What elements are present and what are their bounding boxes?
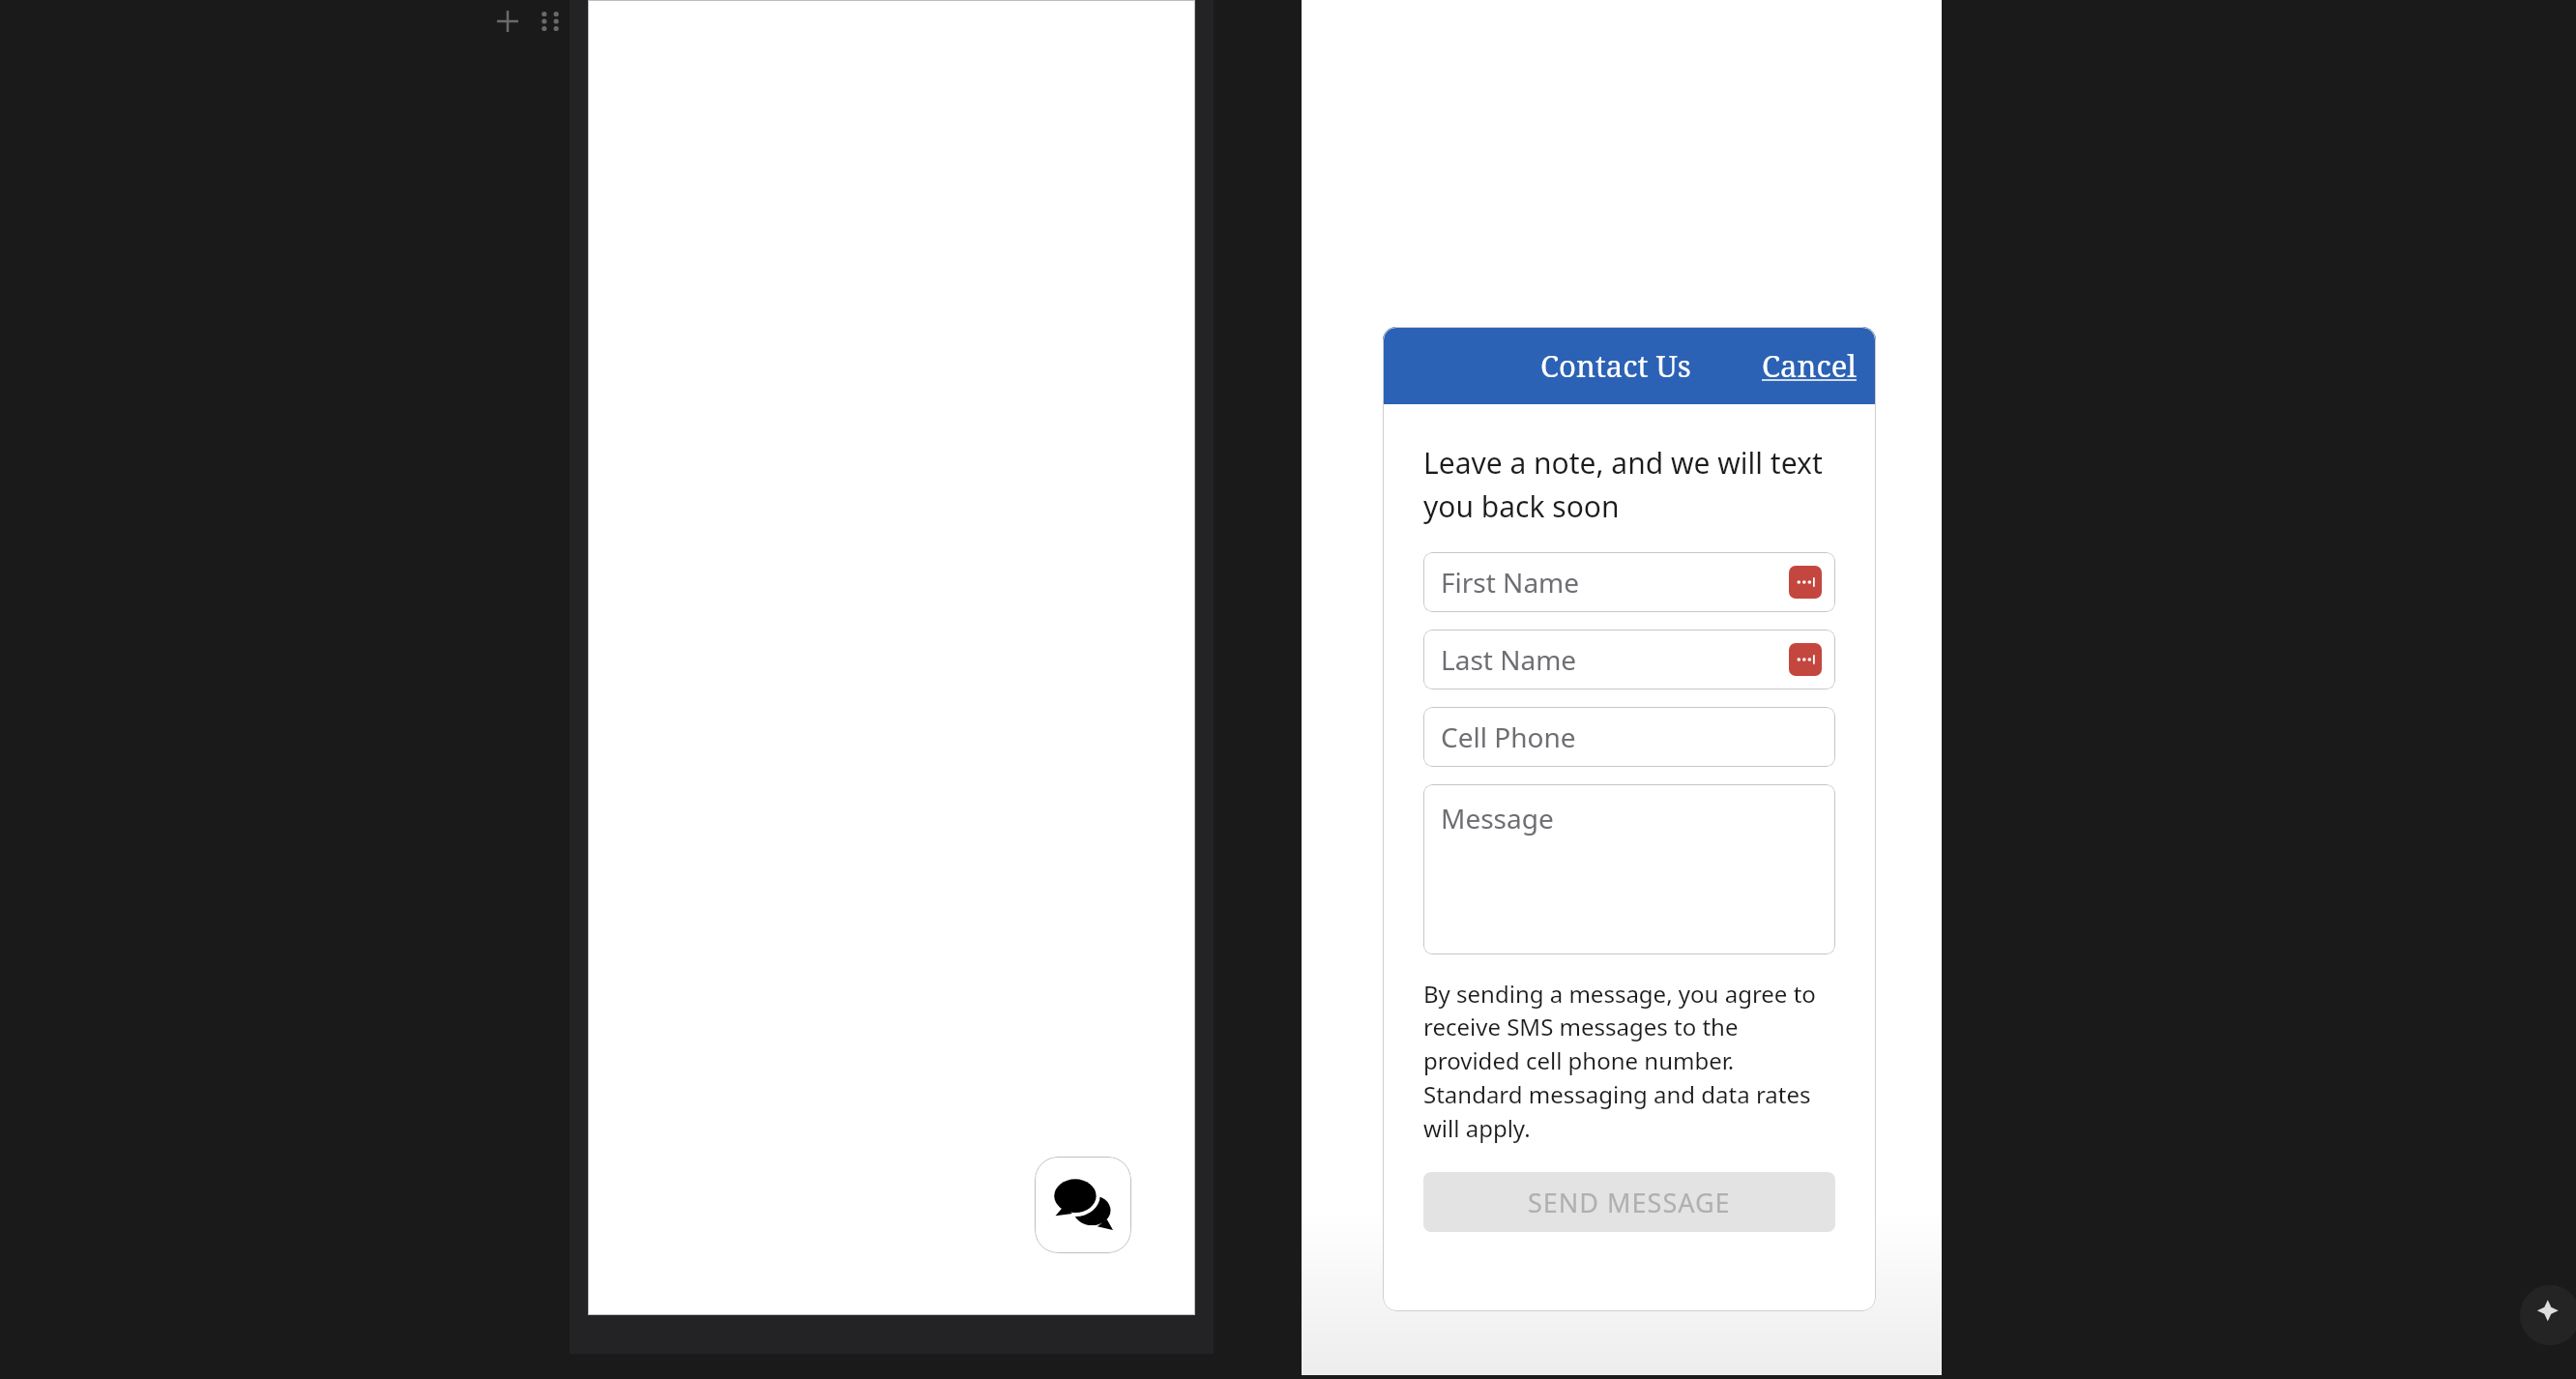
staticText: First Name [1441, 564, 1580, 601]
staticText: Contact Us [1540, 345, 1691, 386]
button[interactable]: Autofill [1789, 643, 1822, 676]
button[interactable]: First Name [1423, 552, 1835, 612]
button[interactable]: Cancel [1758, 339, 1860, 392]
staticText: Message [1441, 800, 1554, 836]
button[interactable]: Grid menu [531, 2, 570, 41]
button[interactable]: Open chat [1035, 1157, 1131, 1253]
staticText: By sending a message, you agree to recei… [1423, 978, 1835, 1145]
staticText: Last Name [1441, 641, 1577, 678]
button[interactable]: Autofill [1789, 566, 1822, 599]
button[interactable]: Last Name [1423, 630, 1835, 689]
button[interactable]: Cell Phone [1423, 707, 1835, 767]
staticText: Cell Phone [1441, 719, 1576, 755]
staticText: Leave a note, and we will text you back … [1423, 443, 1823, 525]
staticText: SEND MESSAGE [1528, 1185, 1731, 1220]
staticText: Cancel [1762, 345, 1857, 386]
button[interactable]: Add [488, 2, 527, 41]
button[interactable]: Message [1423, 784, 1835, 954]
button[interactable]: SEND MESSAGE [1423, 1172, 1835, 1232]
